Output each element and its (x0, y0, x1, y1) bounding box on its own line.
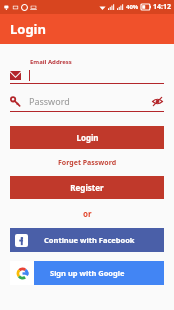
button[interactable]: Password (10, 94, 164, 108)
button[interactable]: Login (10, 126, 164, 149)
button[interactable]: Forget Password (0, 155, 174, 171)
button[interactable]: Continue with Facebook (10, 228, 164, 252)
staticText: Email Address (30, 58, 72, 66)
staticText: Register (70, 182, 104, 193)
staticText: Forget Password (58, 158, 117, 168)
staticText: Sign up with Google (50, 268, 125, 278)
staticText: 14:12 (153, 2, 171, 12)
other: Password (10, 96, 21, 107)
button[interactable] (10, 69, 164, 81)
staticText: Continue with Facebook (44, 235, 135, 245)
button[interactable]: Show password (150, 94, 164, 108)
button[interactable]: Sign up with Google (10, 261, 164, 285)
button[interactable]: Register (10, 176, 164, 199)
staticText: 40% (126, 3, 139, 11)
staticText: or (83, 208, 92, 219)
staticText: Login (10, 20, 46, 38)
staticText: Login (76, 132, 99, 143)
staticText: Password (29, 95, 150, 107)
